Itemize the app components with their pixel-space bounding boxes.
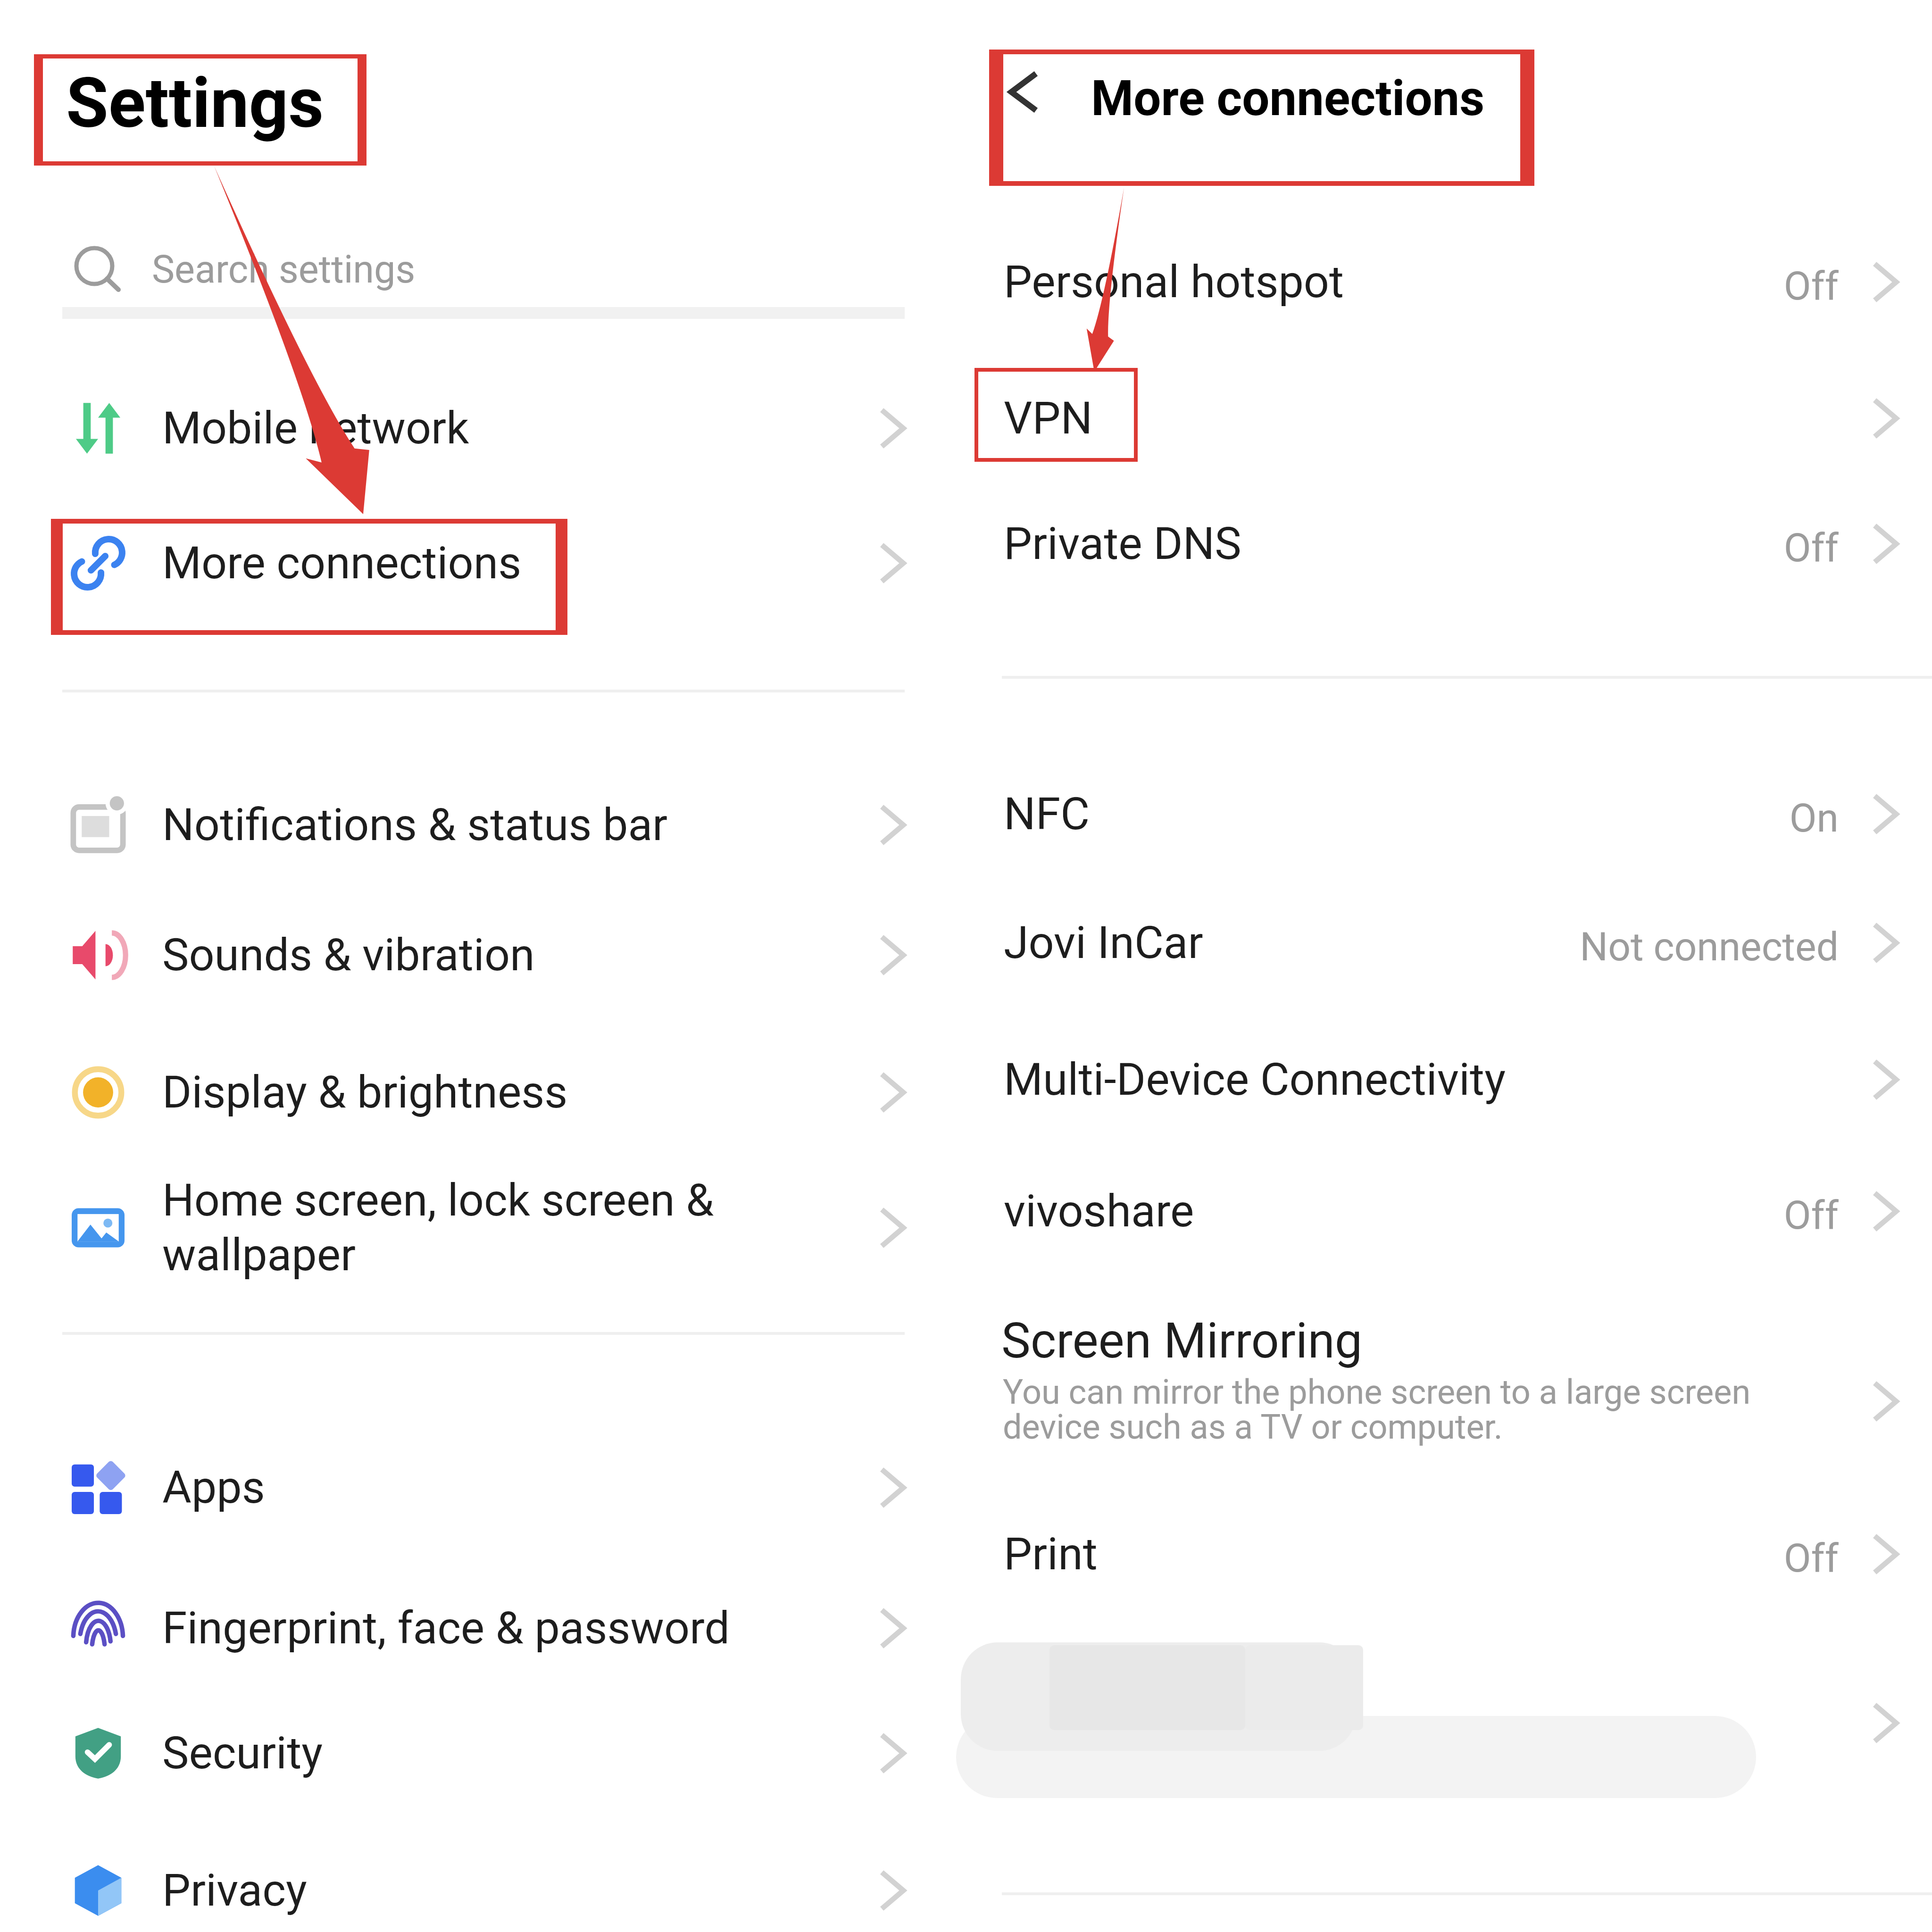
button[interactable] <box>47 1432 915 1531</box>
staticText: More connections <box>162 537 522 589</box>
staticText: More connections <box>1091 70 1485 127</box>
staticText: Not connected <box>1179 924 1839 970</box>
staticText: Off <box>1179 525 1839 571</box>
staticText: Privacy <box>162 1864 307 1916</box>
staticText: Display & brightness <box>162 1066 568 1118</box>
staticText: Personal hotspot <box>1004 256 1344 308</box>
button[interactable] <box>47 1835 915 1932</box>
staticText: Notifications & status bar <box>162 799 668 851</box>
staticText: Off <box>1179 1192 1839 1238</box>
button[interactable] <box>986 226 1932 325</box>
button[interactable] <box>986 758 1932 858</box>
staticText: You can mirror the phone screen to a lar… <box>1003 1372 1751 1412</box>
button[interactable] <box>47 1573 915 1672</box>
button[interactable] <box>47 508 915 607</box>
staticText: Security <box>162 1727 323 1779</box>
staticText: Private DNS <box>1004 517 1241 570</box>
button[interactable] <box>47 1037 915 1136</box>
button[interactable] <box>47 1698 915 1797</box>
staticText: Settings <box>66 63 324 144</box>
staticText: Screen Mirroring <box>1001 1312 1363 1370</box>
staticText: Search settings <box>152 247 416 292</box>
button[interactable] <box>47 1145 915 1300</box>
staticText: Print <box>1004 1528 1098 1580</box>
staticText: Multi-Device Connectivity <box>1004 1053 1506 1106</box>
button[interactable]: Search settings <box>57 219 906 318</box>
button[interactable] <box>986 363 1932 462</box>
button[interactable]: Hidden setting <box>986 1649 1932 1790</box>
staticText: vivoshare <box>1004 1185 1194 1237</box>
staticText: On <box>1179 795 1839 841</box>
staticText: Apps <box>162 1461 265 1514</box>
staticText: VPN <box>1004 392 1093 444</box>
staticText: device such as a TV or computer. <box>1003 1407 1503 1447</box>
button[interactable] <box>986 887 1932 986</box>
staticText: wallpaper <box>162 1229 356 1281</box>
button[interactable] <box>986 1499 1932 1598</box>
button[interactable] <box>986 1156 1932 1255</box>
button[interactable]: Back <box>993 64 1059 130</box>
button[interactable] <box>47 373 915 472</box>
staticText: Fingerprint, face & password <box>162 1602 730 1654</box>
staticText: Off <box>1179 263 1839 309</box>
staticText: Mobile network <box>162 402 469 454</box>
button[interactable] <box>986 1287 1932 1485</box>
button[interactable] <box>47 899 915 999</box>
button[interactable] <box>986 488 1932 587</box>
button[interactable] <box>47 769 915 868</box>
button[interactable] <box>986 1024 1932 1123</box>
staticText: Jovi InCar <box>1004 916 1203 969</box>
staticText: Sounds & vibration <box>162 929 535 981</box>
staticText: NFC <box>1004 788 1090 840</box>
staticText: Off <box>1179 1535 1839 1581</box>
staticText: Home screen, lock screen & <box>162 1174 714 1226</box>
